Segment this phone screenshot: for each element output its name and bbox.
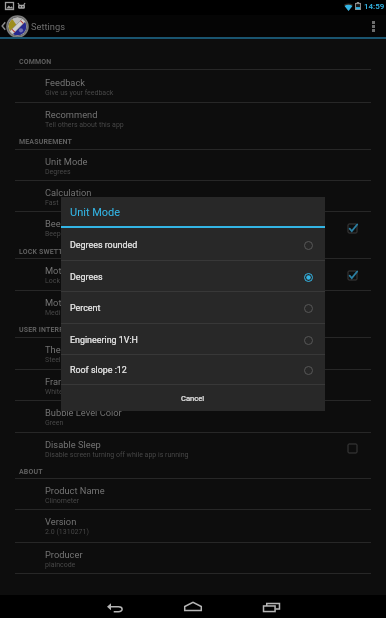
staticText: Calculation [45,187,92,198]
staticText: Steel [45,356,61,364]
button[interactable]: Motion Lock [0,259,386,291]
staticText: LOCK SWETTING [19,248,76,256]
button[interactable]: Unit Mode [0,150,386,181]
staticText: Unit Mode [70,206,121,219]
staticText: COMMON [19,58,52,66]
staticText: Engineering 1V:H [70,335,138,345]
staticText: Unit Mode [45,156,88,167]
button[interactable]: Degrees [61,261,325,293]
button[interactable]: Theme [0,338,386,370]
staticText: Degrees [70,272,103,282]
button[interactable]: Degrees rounded [61,229,325,261]
staticText: Product Name [45,485,105,496]
button[interactable]: Back [75,595,155,618]
button[interactable]: Percent [61,292,325,324]
staticText: Degrees [45,168,71,176]
staticText: Clinometer [45,497,80,505]
button[interactable]: Roof slope :12 [61,355,325,385]
staticText: White [45,388,63,396]
button[interactable]: Version [0,510,386,542]
button[interactable]: Recent apps [231,595,311,618]
staticText: Disable screen turning off while app is … [45,451,189,459]
button[interactable]: Calculation [0,181,386,212]
staticText: Frame Color [45,376,96,387]
button[interactable]: Recommend [0,103,386,134]
button[interactable]: More options [360,15,386,37]
button[interactable]: Product Name [0,479,386,510]
staticText: Settings [31,21,65,32]
staticText: Recommend [45,109,98,120]
button[interactable]: Cancel [61,385,325,411]
button[interactable]: Engineering 1V:H [61,324,325,356]
button[interactable]: Disable Sleep [0,433,386,464]
staticText: Disable Sleep [45,439,101,450]
staticText: Degrees rounded [70,240,138,250]
staticText: MEASUREMENT [19,138,72,146]
staticText: Fast [45,199,59,207]
staticText: Lock on motion [45,277,94,285]
button[interactable]: Beep [0,212,386,244]
button[interactable]: Navigate up [0,15,28,37]
staticText: Motion Sensitivity [45,297,119,308]
staticText: Feedback [45,77,86,88]
button[interactable]: Feedback [0,70,386,103]
staticText: Green [45,419,64,427]
staticText: plaincode [45,561,76,569]
staticText: 2.0 (1310271) [45,528,89,536]
staticText: Medium [45,309,71,317]
staticText: Cancel [181,394,205,403]
staticText: Beep [45,218,66,229]
staticText: Beep on measurement [45,230,116,238]
staticText: Theme [45,344,74,355]
button[interactable]: Frame Color [0,370,386,401]
button[interactable]: Motion Sensitivity [0,291,386,322]
button[interactable]: Producer [0,543,386,574]
staticText: Version [45,516,77,527]
staticText: Producer [45,549,83,560]
staticText: ABOUT [19,468,43,476]
staticText: Bubble Level Color [45,407,122,418]
button[interactable]: Bubble Level Color [0,401,386,433]
staticText: Roof slope :12 [70,365,127,375]
button[interactable]: Home [153,595,233,618]
staticText: Percent [70,303,101,313]
staticText: Tell others about this app [45,121,124,129]
staticText: Motion Lock [45,265,97,276]
staticText: USER INTERFACE [19,326,77,334]
staticText: 14:59 [364,2,385,11]
staticText: Give us your feedback [45,89,114,97]
